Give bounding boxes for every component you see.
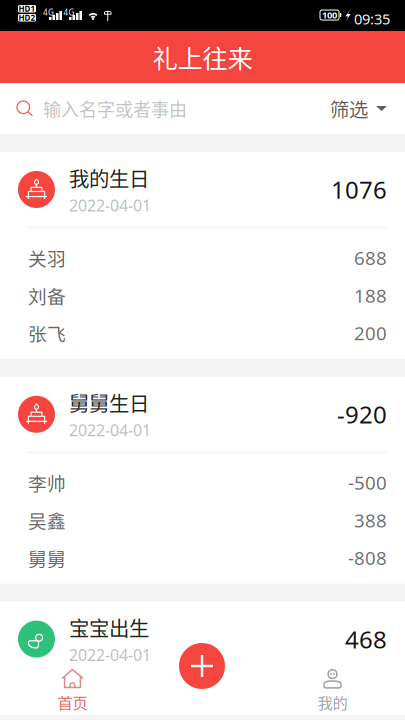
staticText: 4G	[63, 7, 74, 18]
staticText: 4G	[43, 7, 54, 18]
staticText: -808	[348, 545, 387, 570]
staticText: 100	[322, 9, 337, 21]
staticText: 吴鑫	[28, 507, 66, 534]
staticText: -920	[337, 398, 387, 430]
staticText: 200	[354, 321, 387, 345]
staticText: 2022-04-01	[69, 419, 151, 441]
staticText: 688	[354, 245, 387, 270]
button[interactable]: 我的生日	[0, 152, 405, 359]
staticText: 1076	[331, 174, 387, 205]
button[interactable]: 舅舅生日	[0, 377, 405, 584]
staticText: 张飞	[28, 319, 66, 346]
button[interactable]: 输入名字或者事由	[16, 83, 330, 134]
staticText: 李帅	[28, 469, 66, 496]
staticText: 我的	[317, 691, 347, 713]
staticText: 09:35	[354, 9, 390, 28]
staticText: 舅舅	[28, 544, 66, 571]
staticText: 388	[354, 508, 387, 533]
staticText: 关羽	[28, 244, 66, 271]
button[interactable]: 宝宝出生	[0, 602, 405, 720]
staticText: 188	[354, 283, 387, 308]
staticText: 468	[345, 623, 387, 655]
staticText: 268	[354, 695, 387, 720]
staticText: HD2	[18, 12, 35, 23]
button[interactable]: 首页	[0, 667, 145, 715]
staticText: 礼上往来	[152, 39, 252, 75]
staticText: 2022-04-01	[69, 195, 151, 216]
button[interactable]: 我的	[260, 667, 405, 715]
staticText: 王五	[28, 694, 66, 720]
staticText: 首页	[57, 691, 87, 713]
staticText: 宝宝出生	[69, 613, 149, 642]
staticText: 刘备	[28, 282, 66, 309]
staticText: 2022-04-01	[69, 644, 151, 665]
button[interactable]: 筛选	[330, 83, 387, 134]
button[interactable]: 添加	[179, 643, 225, 689]
staticText: -500	[348, 470, 387, 495]
staticText: HD1	[18, 3, 35, 14]
staticText: 舅舅生日	[69, 388, 149, 417]
staticText: 输入名字或者事由	[43, 95, 187, 122]
staticText: 筛选	[330, 94, 368, 122]
staticText: 我的生日	[69, 163, 149, 193]
